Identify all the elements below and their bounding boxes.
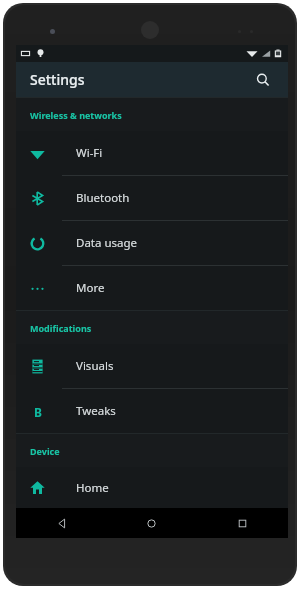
button[interactable]: Recent apps — [197, 508, 288, 538]
button[interactable]: Data usage — [16, 221, 288, 265]
button[interactable]: Search — [248, 65, 278, 95]
staticText: Data usage — [76, 235, 138, 251]
staticText: Tweaks — [76, 403, 116, 419]
button[interactable]: Home — [106, 508, 197, 538]
button[interactable]: Visuals — [16, 344, 288, 388]
staticText: More — [76, 280, 105, 296]
staticText: Wireless & networks — [30, 109, 122, 121]
staticText: Bluetooth — [76, 190, 130, 206]
staticText: Visuals — [76, 358, 114, 374]
button[interactable]: B — [16, 389, 288, 433]
button[interactable]: Wi-Fi — [16, 131, 288, 175]
staticText: Home — [76, 480, 109, 496]
button[interactable]: Home — [16, 467, 288, 508]
button[interactable]: Back — [16, 508, 106, 538]
staticText: Settings — [30, 70, 85, 89]
staticText: Wi-Fi — [76, 145, 103, 161]
button[interactable]: More — [16, 266, 288, 310]
button[interactable]: Bluetooth — [16, 176, 288, 220]
staticText: Device — [30, 445, 60, 457]
staticText: Modifications — [30, 322, 92, 334]
staticText: B — [34, 404, 42, 419]
